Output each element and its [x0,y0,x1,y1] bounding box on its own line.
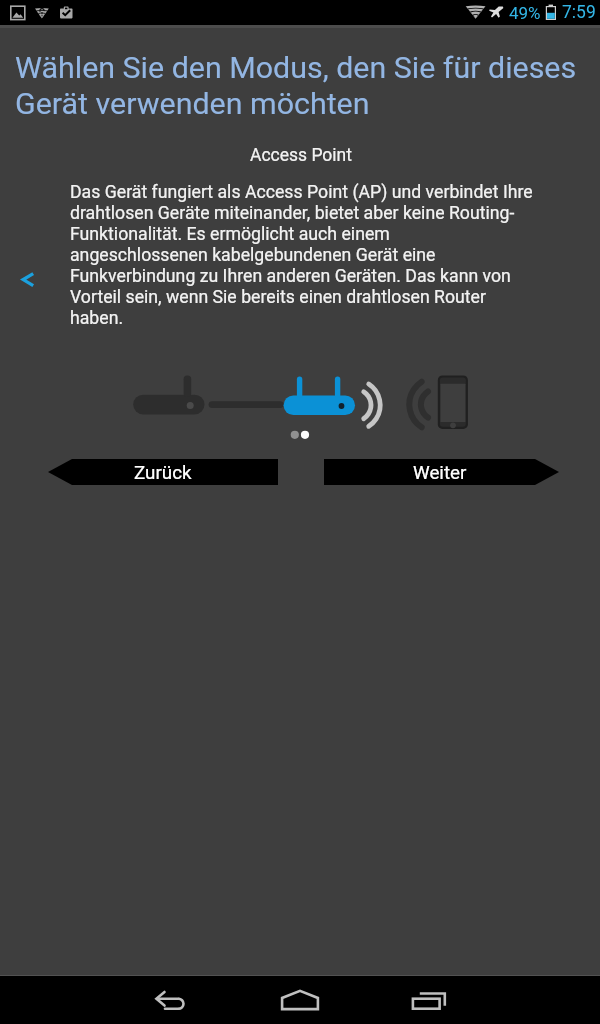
staticText: Das Gerät fungiert als Access Point (AP)… [70,182,533,329]
staticText: 7:59 [562,2,596,23]
button[interactable]: Home [262,976,338,1024]
button[interactable]: Previous page [8,258,48,298]
staticText: 49% [509,3,541,23]
staticText: Zurück [134,462,192,484]
button[interactable]: Page 1 [286,426,304,444]
staticText: Weiter [413,462,467,484]
button[interactable]: Zurück [48,459,278,485]
staticText: Access Point [1,145,600,166]
button[interactable]: Page 2, selected [296,426,314,444]
button[interactable]: Weiter [324,459,559,485]
button[interactable]: Recent apps [391,976,467,1024]
button[interactable]: Back [134,976,210,1024]
staticText: Wählen Sie den Modus, den Sie für dieses… [15,50,577,122]
